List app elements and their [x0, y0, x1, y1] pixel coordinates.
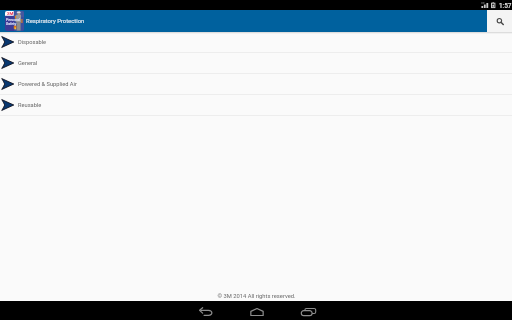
button[interactable]: Powered & Supplied Air [0, 74, 512, 95]
staticText: 1:57 [499, 2, 512, 10]
button[interactable]: Disposable [0, 32, 512, 53]
button[interactable]: Recent apps [282, 303, 334, 320]
button[interactable]: Home [232, 303, 282, 320]
staticText: Powered & Supplied Air [18, 81, 77, 88]
staticText: Disposable [18, 39, 47, 46]
staticText: © 3M 2014 All rights reserved. [217, 293, 296, 300]
button[interactable]: Reusable [0, 95, 512, 116]
staticText: General [18, 60, 38, 67]
staticText: Reusable [18, 102, 42, 109]
staticText: Respiratory Protection [26, 18, 85, 25]
staticText: 3M [7, 11, 14, 16]
button[interactable]: Back [180, 303, 232, 320]
staticText: Personal Safety [6, 18, 21, 26]
button[interactable]: Search [487, 10, 512, 32]
button[interactable]: General [0, 53, 512, 74]
